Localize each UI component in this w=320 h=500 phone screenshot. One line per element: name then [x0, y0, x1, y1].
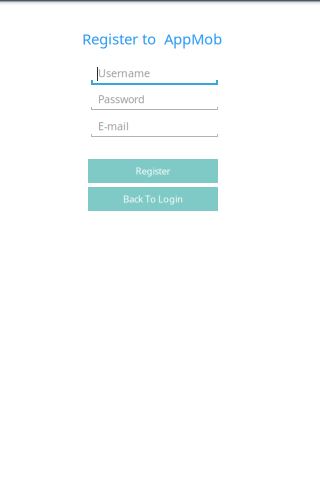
button[interactable]: Password [91, 92, 218, 112]
button[interactable]: Register [88, 159, 218, 183]
button[interactable]: Username [91, 66, 218, 86]
staticText: Password [98, 92, 145, 106]
staticText: E-mail [98, 119, 129, 133]
staticText: Register to AppMob [82, 29, 222, 48]
staticText: Username [98, 66, 150, 80]
staticText: Register [135, 165, 170, 177]
button[interactable]: E-mail [91, 119, 218, 139]
button[interactable]: Back To Login [88, 187, 218, 211]
staticText: Back To Login [123, 193, 183, 205]
